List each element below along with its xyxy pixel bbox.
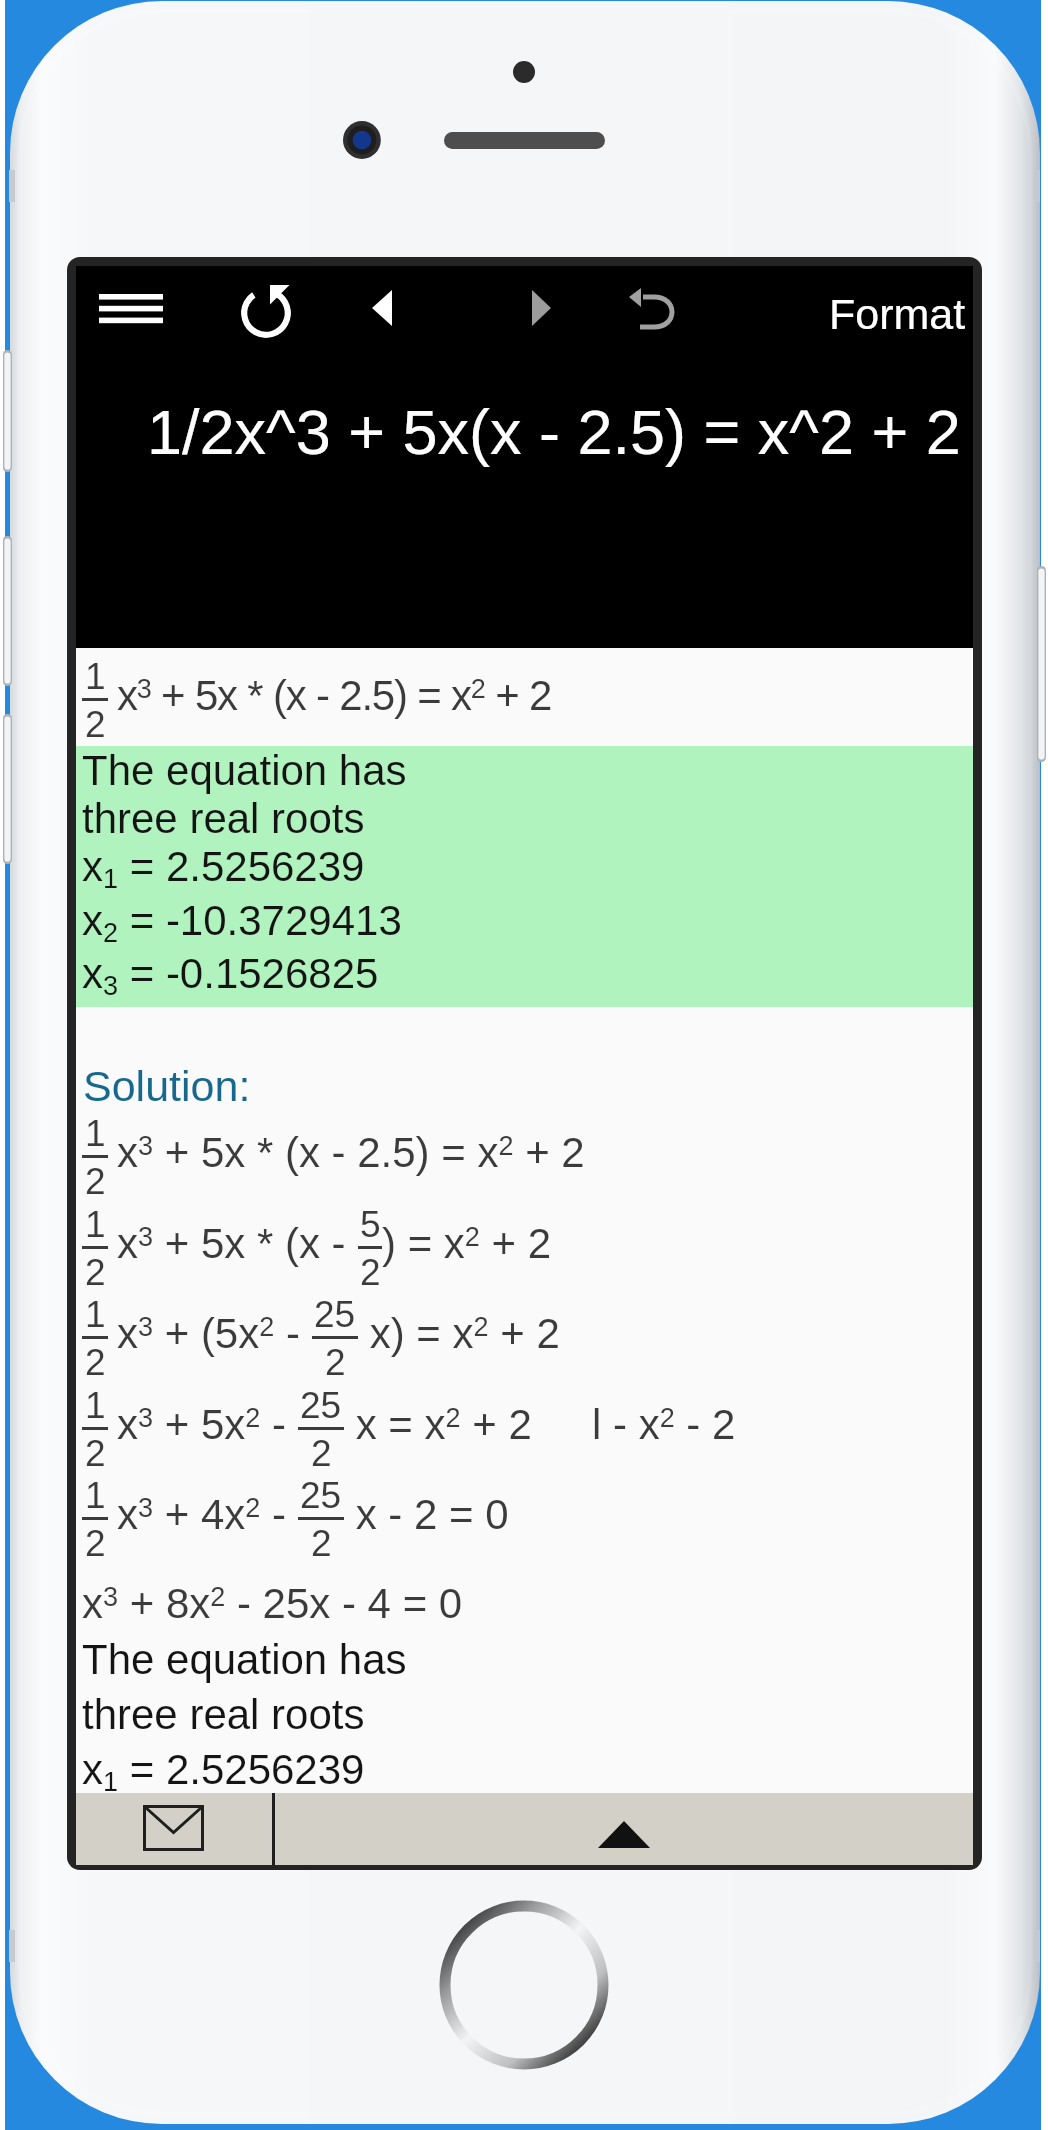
staticText: 2	[85, 1252, 106, 1293]
staticText: The equation has	[82, 1636, 407, 1683]
button[interactable]: Forward	[512, 270, 572, 346]
staticText: 2	[85, 1342, 106, 1383]
staticText: 1/2x^3 + 5x(x - 2.5) = x^2 + 2	[147, 397, 961, 467]
staticText: x3 = -0.1526825	[82, 950, 379, 1001]
staticText: x3 + 4x2 -	[117, 1491, 298, 1538]
staticText: x1 = 2.5256239	[82, 843, 365, 894]
staticText: 2	[85, 1433, 106, 1474]
staticText: Solution:	[83, 1062, 251, 1110]
staticText: three real roots	[82, 1691, 365, 1738]
button[interactable]: Scroll up	[275, 1793, 973, 1865]
staticText: 1	[85, 656, 106, 697]
staticText: x2 = -10.3729413	[82, 897, 402, 948]
button[interactable]: Back	[352, 270, 412, 346]
staticText: 2	[360, 1252, 381, 1293]
staticText: The equation has	[82, 747, 407, 794]
button[interactable]: Undo	[626, 282, 682, 338]
staticText: 1	[85, 1294, 106, 1335]
staticText: x - 2 = 0	[344, 1491, 509, 1538]
staticText: 25	[314, 1294, 356, 1335]
button[interactable]: Menu	[83, 278, 179, 344]
staticText: 1	[85, 1385, 106, 1426]
staticText: x = x2 + 2	[344, 1401, 532, 1448]
staticText: 2	[311, 1433, 332, 1474]
staticText: 2	[85, 704, 106, 745]
staticText: x3 + 5x2 -	[117, 1401, 298, 1448]
staticText: 2	[311, 1523, 332, 1564]
staticText: 5	[360, 1204, 381, 1245]
button[interactable]: Reload	[228, 275, 304, 351]
staticText: x3 + 5x * (x - 2.5) = x2 + 2	[117, 1129, 585, 1176]
staticText: 1	[85, 1113, 106, 1154]
staticText: x) = x2 + 2	[358, 1310, 560, 1357]
staticText: x3 + 5x * (x -	[117, 1220, 358, 1267]
staticText: x1 = 2.5256239	[82, 1746, 365, 1797]
staticText: 2	[85, 1523, 106, 1564]
staticText: 1	[85, 1475, 106, 1516]
staticText: 25	[300, 1475, 342, 1516]
staticText: x3 + (5x2 -	[117, 1310, 312, 1357]
staticText: ) = x2 + 2	[382, 1220, 552, 1267]
button[interactable]: Solution:	[71, 1054, 263, 1118]
button[interactable]: Email	[76, 1793, 272, 1865]
staticText: 1	[85, 1204, 106, 1245]
staticText: 2	[85, 1161, 106, 1202]
staticText: x3 + 8x2 - 25x - 4 = 0	[82, 1580, 463, 1627]
staticText: l - x2 - 2	[592, 1401, 736, 1448]
staticText: three real roots	[82, 795, 365, 842]
staticText: x3 + 5x * (x - 2.5) = x2 + 2	[117, 672, 552, 719]
staticText: 2	[325, 1342, 346, 1383]
button[interactable]: Format	[817, 280, 978, 348]
staticText: 25	[300, 1385, 342, 1426]
staticText: Format	[829, 290, 966, 338]
